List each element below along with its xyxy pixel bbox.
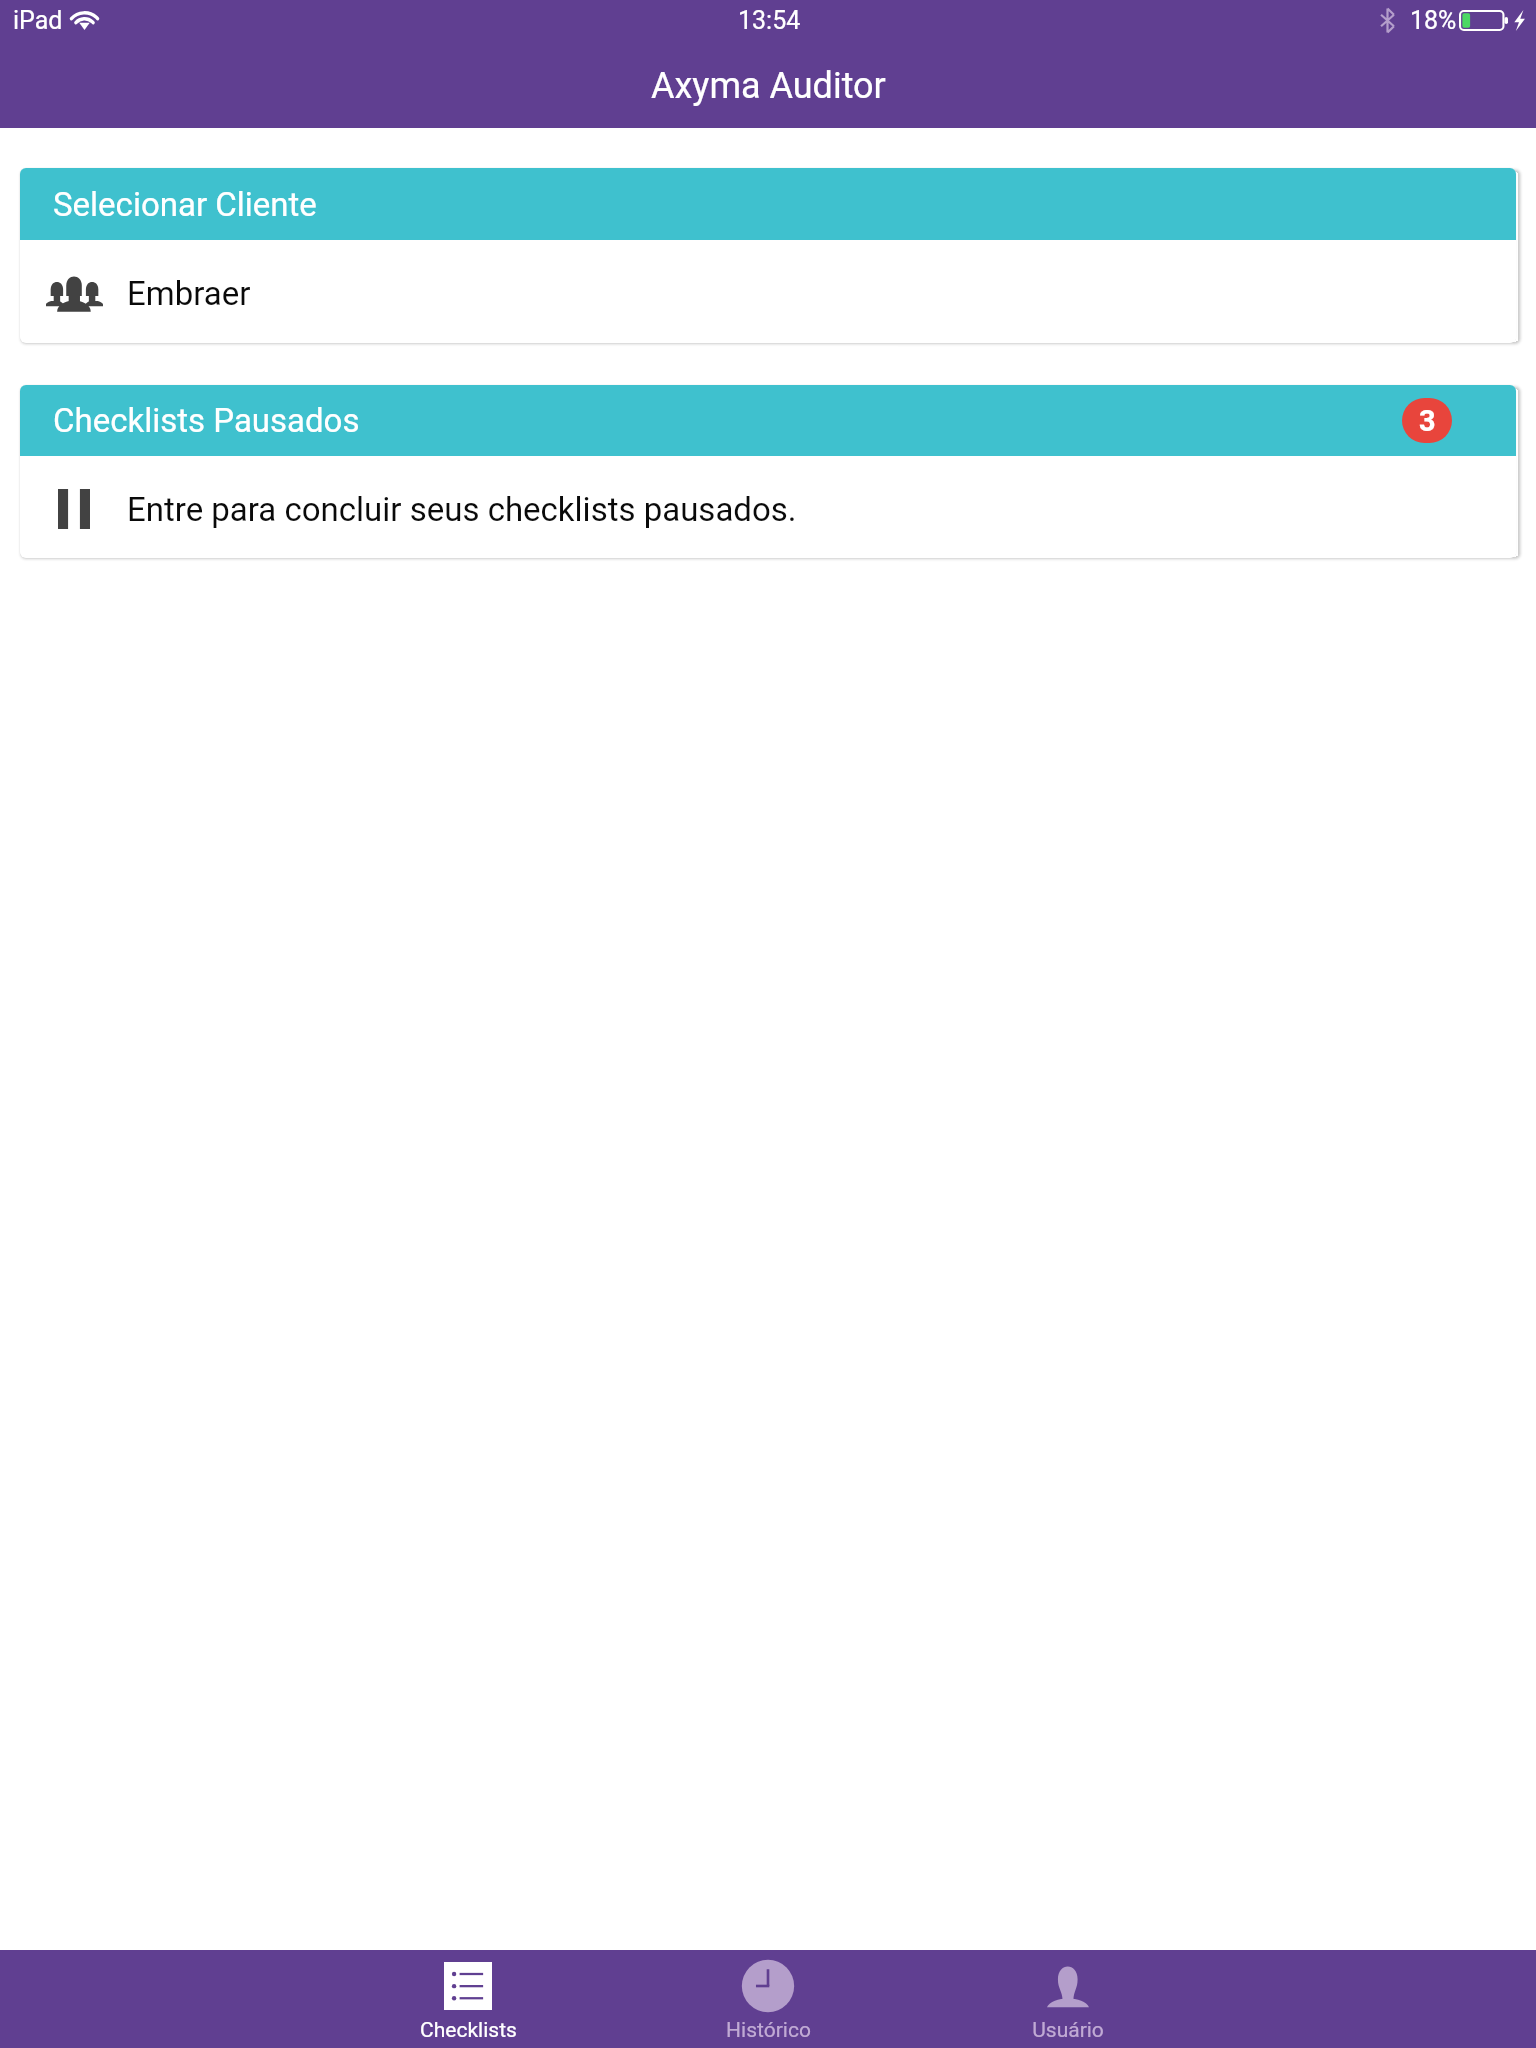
button[interactable]: Checklists — [318, 1950, 618, 2048]
button[interactable]: Selecionar Cliente — [20, 168, 1516, 240]
button[interactable]: Histórico — [618, 1950, 918, 2048]
staticText: 18% — [1410, 6, 1457, 35]
staticText: Checklists — [420, 2018, 517, 2043]
button[interactable]: Entre para concluir seus checklists paus… — [20, 456, 1516, 558]
staticText: 3 — [1419, 404, 1436, 438]
staticText: Checklists Pausados — [53, 401, 360, 440]
staticText: Usuário — [1032, 2018, 1104, 2043]
button[interactable]: Usuário — [918, 1950, 1218, 2048]
staticText: iPad — [13, 6, 63, 35]
button[interactable]: Paused checklists count — [1402, 398, 1452, 443]
button[interactable]: Checklists Pausados — [20, 385, 1516, 456]
staticText: Histórico — [726, 2018, 811, 2043]
staticText: Selecionar Cliente — [53, 185, 317, 224]
staticText: 13:54 — [738, 6, 801, 35]
staticText: Embraer — [127, 274, 251, 313]
button[interactable]: Embraer — [20, 240, 1516, 343]
staticText: Entre para concluir seus checklists paus… — [127, 490, 797, 529]
staticText: Axyma Auditor — [651, 65, 886, 107]
